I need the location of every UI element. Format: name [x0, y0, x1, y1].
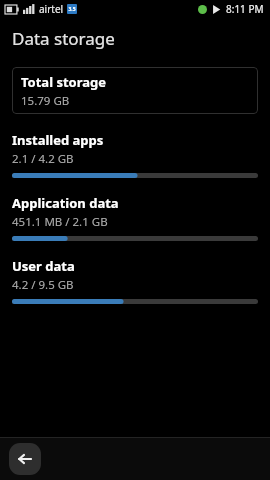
- staticText: 2.1 / 4.2 GB: [12, 151, 74, 167]
- button[interactable]: Total storage: [12, 67, 258, 114]
- staticText: 3.5: [68, 6, 76, 13]
- button[interactable]: User data: [0, 257, 270, 304]
- staticText: 451.1 MB / 2.1 GB: [12, 214, 108, 230]
- button[interactable]: Back: [9, 443, 41, 475]
- staticText: Data storage: [12, 27, 115, 50]
- staticText: Installed apps: [12, 131, 104, 149]
- staticText: 8:11 PM: [226, 2, 264, 16]
- staticText: airtel: [39, 2, 64, 16]
- button[interactable]: Installed apps: [0, 131, 270, 178]
- staticText: 15.79 GB: [21, 93, 70, 109]
- staticText: Total storage: [21, 73, 107, 91]
- staticText: 4.2 / 9.5 GB: [12, 277, 74, 293]
- staticText: User data: [12, 257, 75, 275]
- button[interactable]: Application data: [0, 194, 270, 241]
- staticText: Application data: [12, 194, 119, 212]
